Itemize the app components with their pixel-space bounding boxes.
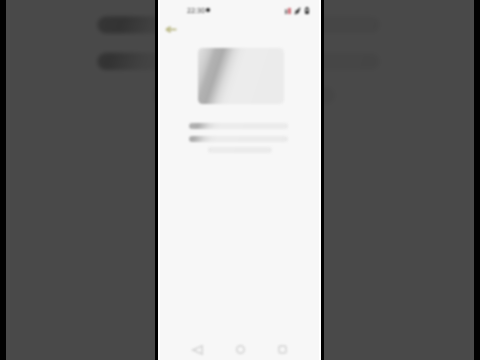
staticText: 22:30 <box>187 6 205 16</box>
button[interactable]: Navigate up <box>160 19 181 40</box>
button[interactable]: Recent apps <box>271 338 293 360</box>
button[interactable]: Home <box>229 338 251 360</box>
button[interactable]: Back <box>186 339 208 360</box>
